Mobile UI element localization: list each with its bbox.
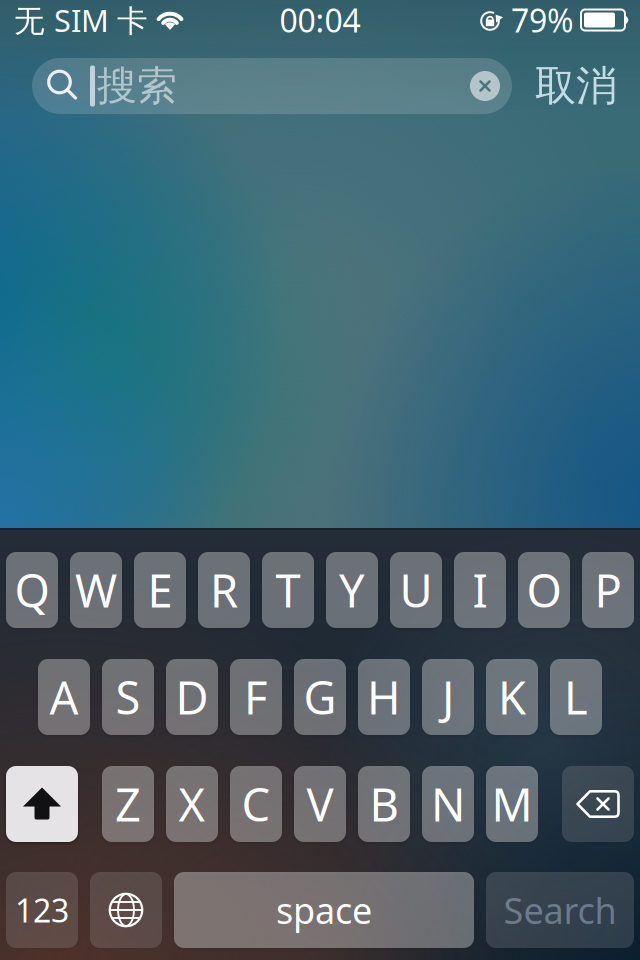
staticText: 取消	[535, 61, 617, 111]
staticText: space	[276, 886, 372, 934]
button[interactable]: L	[550, 659, 602, 735]
staticText: T	[275, 560, 300, 620]
staticText: S	[115, 667, 140, 727]
button[interactable]: S	[102, 659, 154, 735]
staticText: Q	[14, 560, 49, 620]
button[interactable]: 清除文本	[470, 58, 512, 101]
staticText: 123	[15, 889, 69, 931]
button[interactable]: U	[390, 552, 442, 628]
staticText: N	[431, 774, 465, 834]
button[interactable]: D	[166, 659, 218, 735]
staticText: I	[472, 560, 487, 620]
staticText: Search	[503, 886, 616, 934]
button[interactable]: X	[166, 766, 218, 842]
staticText: V	[306, 774, 333, 834]
staticText: Z	[115, 774, 141, 834]
button[interactable]: G	[294, 659, 346, 735]
staticText: B	[369, 774, 398, 834]
button[interactable]: 搜索	[32, 58, 512, 114]
button[interactable]: T	[262, 552, 314, 628]
staticText: M	[491, 774, 532, 834]
button[interactable]: space	[174, 872, 474, 948]
staticText: J	[442, 667, 454, 727]
staticText: 00:04	[279, 0, 360, 41]
button[interactable]: Shift	[6, 766, 78, 842]
staticText: F	[244, 667, 268, 727]
button[interactable]: Search	[486, 872, 634, 948]
button[interactable]: V	[294, 766, 346, 842]
button[interactable]: Q	[6, 552, 58, 628]
button[interactable]: O	[518, 552, 570, 628]
staticText: U	[399, 560, 432, 620]
staticText: R	[210, 560, 238, 620]
button[interactable]: N	[422, 766, 474, 842]
button[interactable]: Z	[102, 766, 154, 842]
staticText: H	[367, 667, 401, 727]
staticText: X	[178, 774, 205, 834]
button[interactable]: J	[422, 659, 474, 735]
staticText: 搜索	[97, 61, 177, 110]
button[interactable]: 数字键盘	[6, 872, 78, 948]
staticText: C	[241, 774, 270, 834]
button[interactable]: B	[358, 766, 410, 842]
staticText: 无 SIM 卡	[14, 0, 148, 40]
button[interactable]: K	[486, 659, 538, 735]
button[interactable]: E	[134, 552, 186, 628]
button[interactable]: 取消	[512, 58, 640, 114]
button[interactable]: M	[486, 766, 538, 842]
button[interactable]: R	[198, 552, 250, 628]
button[interactable]: W	[70, 552, 122, 628]
staticText: W	[75, 560, 117, 620]
button[interactable]: H	[358, 659, 410, 735]
button[interactable]: I	[454, 552, 506, 628]
staticText: P	[594, 560, 621, 620]
staticText: L	[564, 667, 588, 727]
staticText: K	[498, 667, 526, 727]
button[interactable]: P	[582, 552, 634, 628]
staticText: G	[303, 667, 336, 727]
button[interactable]: 下一个键盘	[90, 872, 162, 948]
button[interactable]: F	[230, 659, 282, 735]
staticText: O	[526, 560, 561, 620]
staticText: A	[49, 667, 78, 727]
staticText: 79%	[511, 0, 574, 41]
button[interactable]: C	[230, 766, 282, 842]
staticText: Y	[339, 560, 365, 620]
button[interactable]: Y	[326, 552, 378, 628]
staticText: E	[147, 560, 172, 620]
staticText: D	[175, 667, 208, 727]
button[interactable]: Delete	[562, 766, 634, 842]
button[interactable]: A	[38, 659, 90, 735]
